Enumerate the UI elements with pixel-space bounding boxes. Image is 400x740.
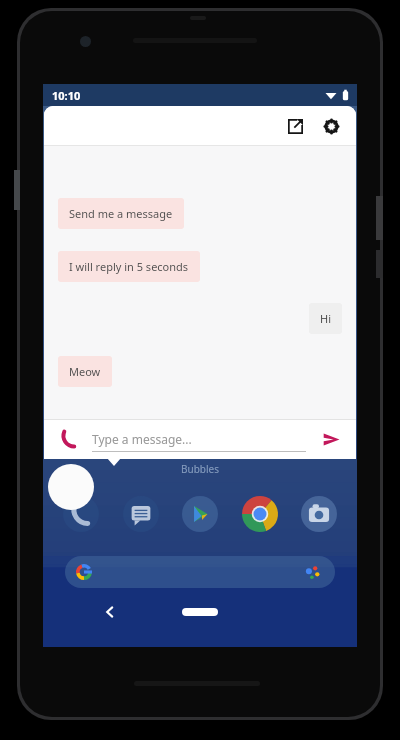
button[interactable]: Back <box>103 605 117 619</box>
staticText: Hi <box>320 311 331 326</box>
button[interactable]: Call <box>56 426 82 452</box>
button[interactable]: Settings <box>316 111 346 141</box>
button[interactable]: Type a message... <box>92 426 306 452</box>
staticText: Type a message... <box>92 431 192 447</box>
button[interactable]: Home <box>182 608 218 616</box>
button[interactable]: Send me a message <box>58 198 184 229</box>
staticText: Send me a message <box>69 206 173 221</box>
staticText: Bubbles <box>43 462 357 476</box>
button[interactable]: App <box>180 494 220 534</box>
button[interactable]: App <box>240 494 280 534</box>
button[interactable]: Send <box>318 426 344 452</box>
button[interactable]: Open in app <box>280 111 310 141</box>
staticText: I will reply in 5 seconds <box>69 259 189 274</box>
button[interactable]: Hi <box>309 303 342 334</box>
button[interactable]: Chat bubble <box>48 464 94 510</box>
button[interactable]: App <box>61 494 101 534</box>
button[interactable]: App <box>121 494 161 534</box>
button[interactable]: App <box>299 494 339 534</box>
button[interactable]: I will reply in 5 seconds <box>58 251 200 282</box>
button[interactable]: Meow <box>58 356 112 387</box>
button[interactable]: Google Search <box>65 556 335 588</box>
staticText: Meow <box>69 364 101 379</box>
staticText: 10:10 <box>52 88 81 103</box>
